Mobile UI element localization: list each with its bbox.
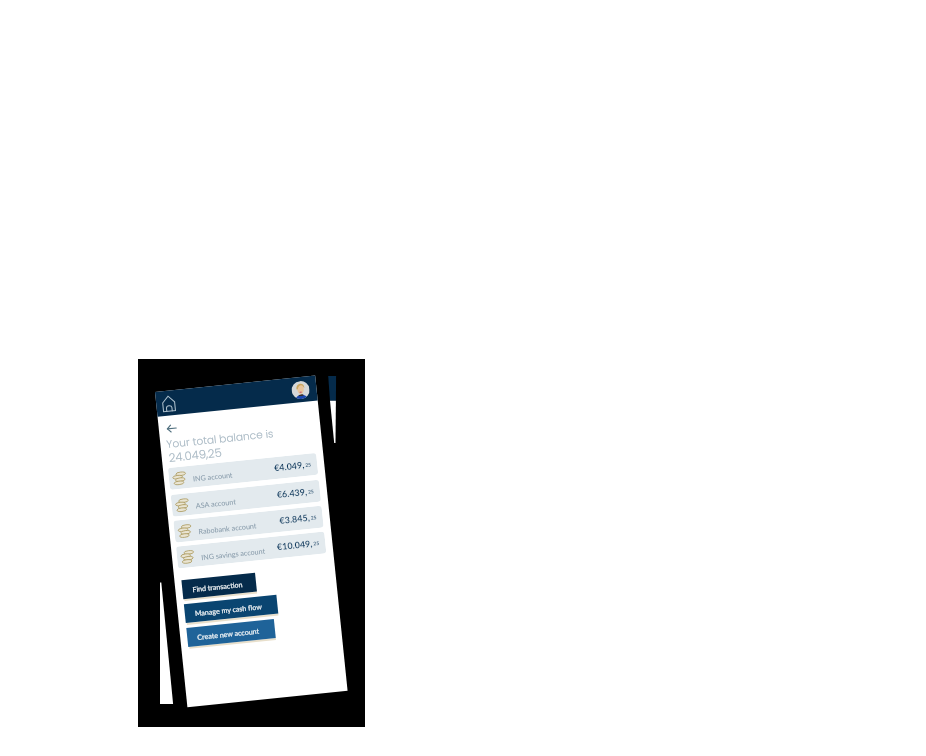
- button[interactable]: Rabobank account: [173, 506, 324, 543]
- staticText: ING savings account: [201, 546, 266, 562]
- button[interactable]: ING account: [168, 453, 318, 490]
- staticText: Your total balance is: [166, 426, 275, 452]
- staticText: 25: [310, 514, 317, 521]
- staticText: Find transaction: [192, 580, 244, 594]
- button[interactable]: Manage my cash flow: [184, 595, 278, 623]
- staticText: €6.439,: [227, 486, 307, 505]
- staticText: €10.049,: [232, 538, 313, 557]
- staticText: 24.049,25: [168, 444, 223, 466]
- staticText: ING account: [193, 470, 233, 483]
- staticText: Rabobank account: [198, 521, 258, 536]
- button[interactable]: ASA account: [171, 480, 321, 517]
- staticText: 25: [313, 540, 320, 547]
- staticText: €3.845,: [229, 512, 310, 531]
- staticText: Create new account: [197, 627, 259, 642]
- staticText: ASA account: [195, 497, 237, 510]
- button[interactable]: Find transaction: [181, 573, 257, 599]
- button[interactable]: Create new account: [186, 619, 276, 647]
- button[interactable]: ING savings account: [176, 531, 326, 568]
- button[interactable]: Back: [161, 420, 181, 436]
- staticText: 25: [305, 461, 311, 468]
- staticText: €4.049,: [224, 459, 305, 478]
- button[interactable]: Profile: [291, 380, 310, 400]
- button[interactable]: Home: [158, 392, 179, 415]
- staticText: 25: [308, 488, 314, 495]
- staticText: Manage my cash flow: [194, 602, 263, 618]
